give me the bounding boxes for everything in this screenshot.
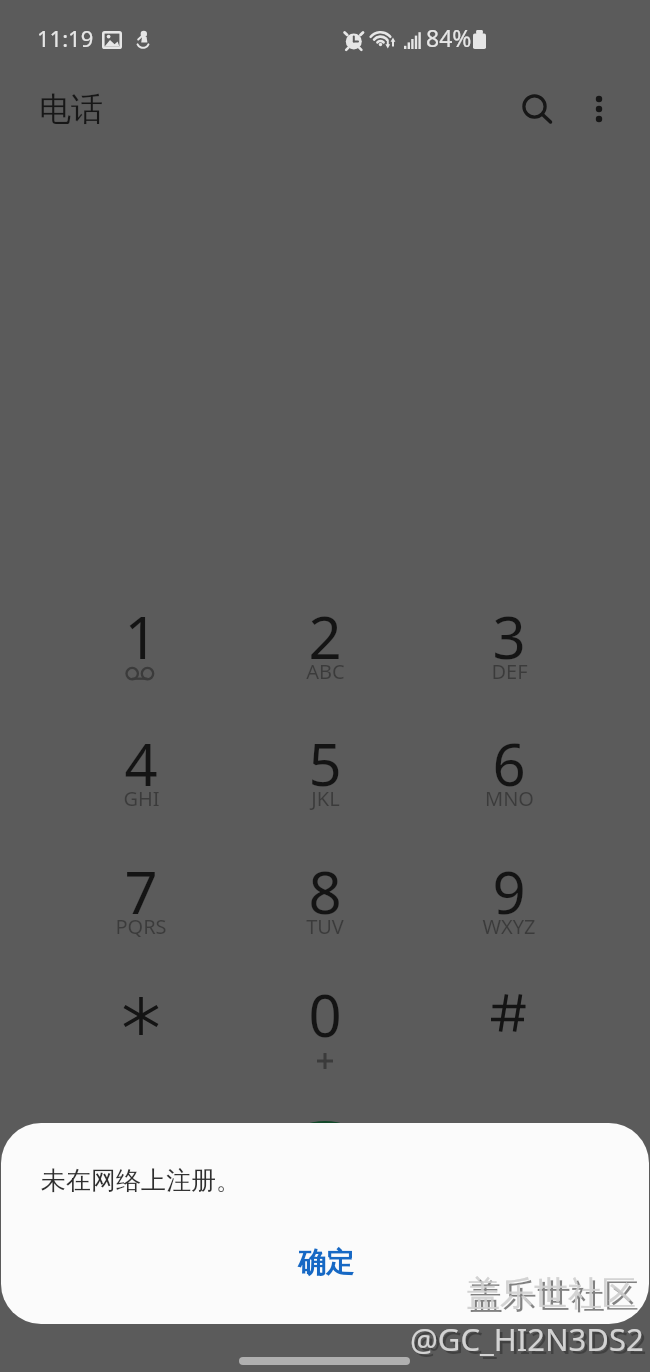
staticText: @GC_HI2N3DS2 — [413, 1321, 647, 1363]
button[interactable] — [61, 986, 221, 1098]
button[interactable]: 4 — [61, 735, 221, 847]
staticText: 未在网络上注册。 — [41, 1165, 241, 1196]
staticText: 电话 — [39, 89, 103, 129]
button[interactable]: 6 — [429, 735, 589, 847]
staticText: 盖乐世社区 — [469, 1275, 639, 1318]
button[interactable]: 0 — [245, 986, 405, 1098]
staticText: 6 — [492, 724, 526, 803]
staticText: 确定 — [298, 1245, 354, 1280]
staticText: 84% — [426, 22, 472, 53]
staticText: 3 — [492, 597, 526, 676]
staticText: 0 — [308, 975, 342, 1054]
staticText: 盖乐世社区 — [466, 1272, 636, 1315]
staticText: WXYZ — [482, 913, 536, 940]
staticText: 11:19 — [37, 23, 94, 53]
staticText: @GC_HI2N3DS2 — [410, 1318, 644, 1360]
staticText: 2 — [308, 597, 342, 676]
staticText: ABC — [306, 658, 345, 685]
button[interactable]: 确定 — [251, 1230, 401, 1294]
staticText: PQRS — [115, 913, 167, 940]
staticText: 4 — [124, 724, 158, 803]
staticText: 5 — [308, 724, 342, 803]
button[interactable]: 5 — [245, 735, 405, 847]
staticText: 1 — [124, 597, 158, 676]
button[interactable]: Call — [262, 1121, 388, 1247]
staticText: MNO — [485, 785, 534, 812]
button[interactable]: Search — [505, 78, 569, 142]
staticText: JKL — [311, 785, 340, 812]
staticText: GHI — [123, 785, 160, 812]
button[interactable]: 9 — [429, 863, 589, 975]
button[interactable]: 3 — [429, 608, 589, 720]
staticText: 9 — [492, 852, 526, 931]
button[interactable]: 2 — [245, 608, 405, 720]
button[interactable] — [429, 986, 589, 1098]
button[interactable]: 1 — [61, 608, 221, 720]
staticText: 7 — [124, 852, 158, 931]
staticText: DEF — [491, 658, 528, 685]
staticText: 8 — [308, 852, 342, 931]
staticText: TUV — [306, 913, 344, 940]
button[interactable]: 7 — [61, 863, 221, 975]
button[interactable]: More options — [567, 78, 631, 142]
button[interactable]: 8 — [245, 863, 405, 975]
